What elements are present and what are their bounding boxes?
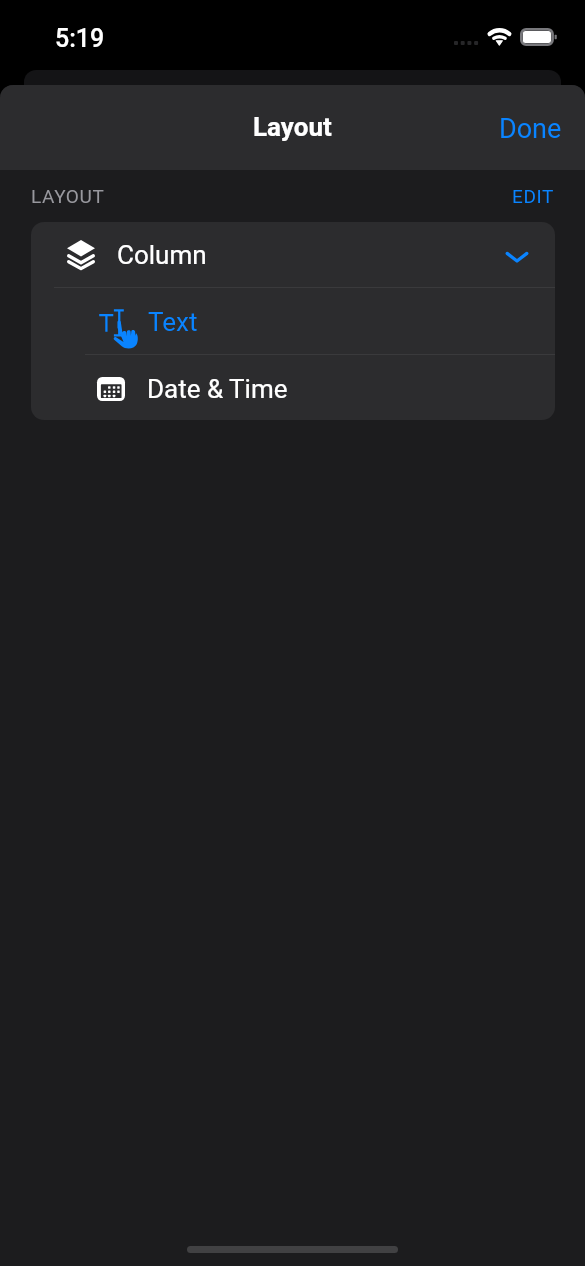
- staticText: Date & Time: [147, 374, 288, 404]
- button[interactable]: Text: [31, 288, 555, 354]
- button[interactable]: Done: [476, 98, 585, 158]
- staticText: Text: [148, 307, 198, 337]
- button[interactable]: Calendar: [31, 355, 555, 420]
- other: Calendar: [97, 377, 125, 401]
- staticText: Layout: [253, 112, 332, 142]
- button[interactable]: EDIT: [481, 175, 585, 217]
- button[interactable]: Layers: [31, 222, 555, 287]
- staticText: LAYOUT: [31, 185, 105, 207]
- other: Text: [99, 309, 138, 348]
- staticText: EDIT: [512, 185, 554, 207]
- other: Collapse: [504, 243, 530, 269]
- staticText: Done: [499, 113, 562, 145]
- staticText: 5:19: [55, 24, 105, 53]
- other: Layers: [67, 240, 95, 269]
- staticText: Column: [117, 240, 207, 270]
